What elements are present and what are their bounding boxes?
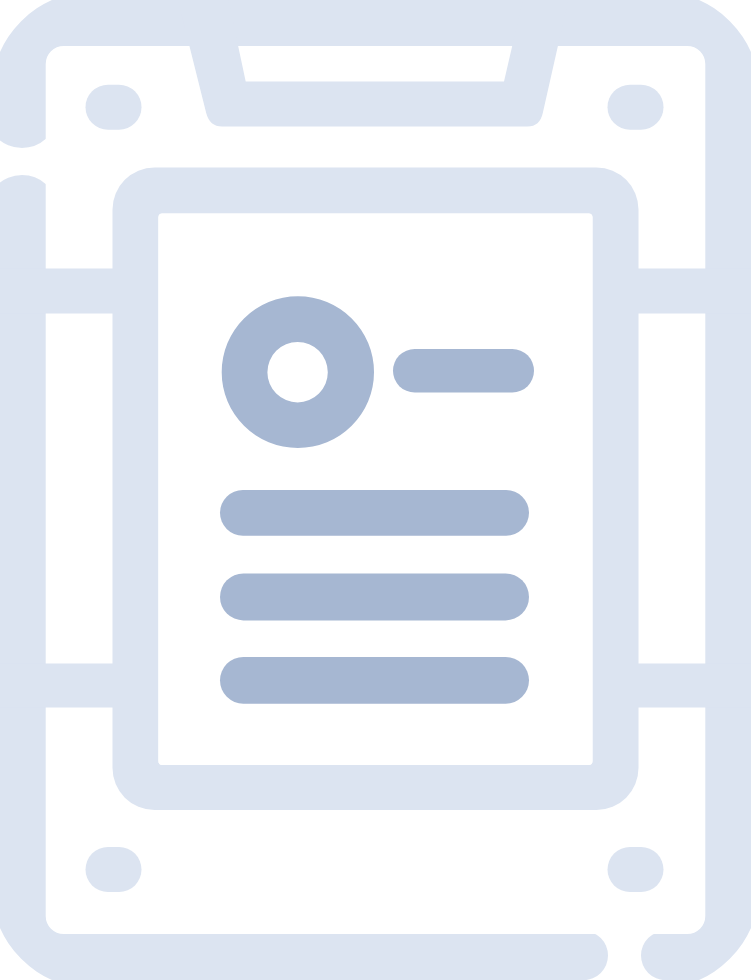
button[interactable]: Clipboard document illustration [0, 0, 751, 980]
